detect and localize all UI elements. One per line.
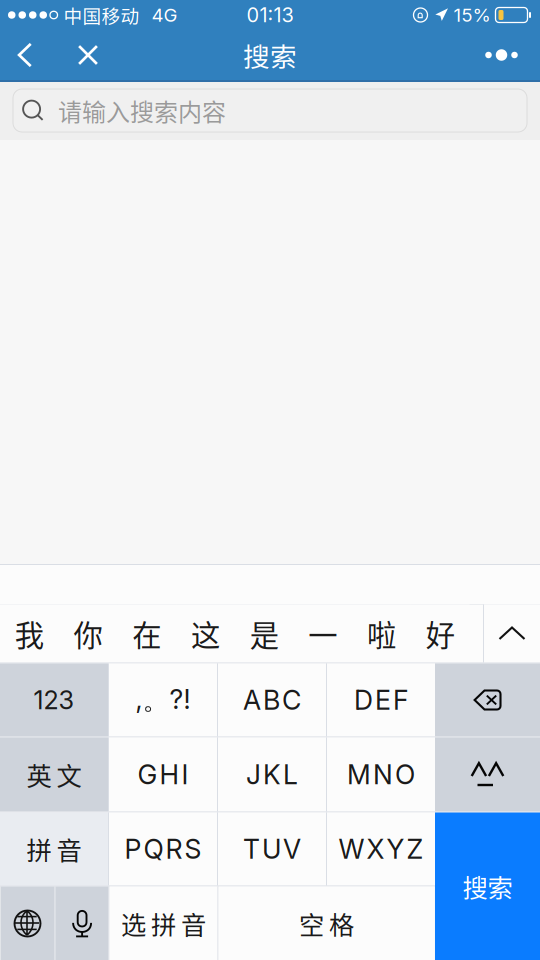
staticText: T U V	[243, 833, 301, 865]
staticText: M N O	[347, 758, 415, 791]
button[interactable]: 删除	[435, 663, 540, 736]
staticText: G H I	[137, 758, 188, 791]
staticText: J K L	[246, 758, 298, 791]
button[interactable]: 搜索	[435, 812, 540, 960]
button[interactable]: 好	[411, 604, 470, 662]
button[interactable]: 请输入搜索内容	[13, 89, 527, 132]
staticText: 我	[15, 612, 44, 655]
staticText: 01:13	[246, 3, 293, 27]
button[interactable]: A B C	[218, 663, 326, 736]
button[interactable]: 在	[117, 604, 176, 662]
staticText: W X Y Z	[338, 833, 423, 865]
button[interactable]: 123	[0, 663, 108, 736]
staticText: 中国移动	[63, 1, 139, 28]
button[interactable]: 收起键盘	[484, 604, 540, 662]
staticText: ,。?!	[135, 683, 190, 717]
button[interactable]: 语音输入	[55, 886, 108, 960]
staticText: 15%	[453, 4, 490, 26]
button[interactable]: D E F	[327, 663, 435, 736]
button[interactable]: 拼 音	[0, 812, 108, 885]
button[interactable]: W X Y Z	[327, 812, 435, 885]
staticText: 一	[308, 612, 337, 655]
button[interactable]: 关闭	[50, 30, 108, 80]
staticText: 英 文	[26, 756, 81, 793]
button[interactable]: 是	[235, 604, 293, 662]
staticText: P Q R S	[124, 833, 201, 865]
button[interactable]: 选 拼 音	[109, 886, 217, 960]
staticText: 搜索	[462, 868, 512, 905]
button[interactable]: J K L	[218, 737, 326, 811]
button[interactable]: P Q R S	[109, 812, 217, 885]
staticText: 啦	[367, 612, 396, 655]
button[interactable]: 表情	[435, 737, 540, 811]
staticText: 好	[426, 612, 455, 655]
staticText: 选 拼 音	[121, 905, 206, 942]
staticText: D E F	[354, 684, 408, 716]
button[interactable]: 这	[176, 604, 235, 662]
button[interactable]: 你	[59, 604, 117, 662]
button[interactable]: 切换输入法	[0, 886, 54, 960]
staticText: 在	[132, 612, 161, 655]
staticText: 拼 音	[26, 831, 81, 867]
button[interactable]: G H I	[109, 737, 217, 811]
staticText: 是	[250, 612, 279, 655]
button[interactable]: 空 格	[218, 886, 434, 960]
button[interactable]: 更多	[475, 30, 528, 80]
button[interactable]: 啦	[352, 604, 411, 662]
staticText: 123	[33, 685, 74, 715]
button[interactable]: M N O	[327, 737, 435, 811]
staticText: 这	[191, 612, 220, 655]
staticText: 4G	[151, 4, 177, 26]
button[interactable]: 一	[293, 604, 352, 662]
staticText: A B C	[243, 684, 301, 716]
button[interactable]: 返回	[0, 30, 50, 80]
staticText: 搜索	[243, 36, 297, 74]
button[interactable]: 英 文	[0, 737, 108, 811]
button[interactable]: ,。?!	[109, 663, 217, 736]
button[interactable]: 我	[0, 604, 59, 662]
button[interactable]: T U V	[218, 812, 326, 885]
staticText: 你	[74, 612, 103, 655]
staticText: 空 格	[299, 905, 354, 942]
staticText: 请输入搜索内容	[58, 93, 226, 128]
